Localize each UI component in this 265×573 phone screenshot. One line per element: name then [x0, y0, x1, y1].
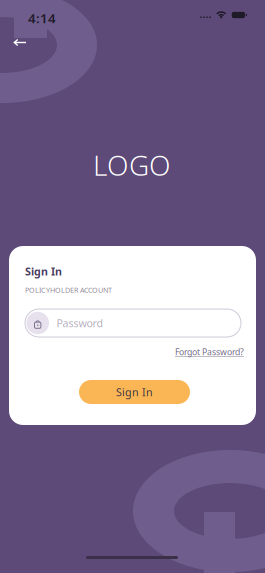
staticText: Forgot Password?: [175, 346, 244, 358]
staticText: Password: [56, 316, 103, 330]
staticText: 4:14: [28, 9, 56, 27]
staticText: Sign In: [116, 385, 153, 399]
button[interactable]: Password: [25, 309, 241, 337]
button[interactable]: Sign In: [79, 380, 190, 404]
staticText: POLICYHOLDER ACCOUNT: [25, 285, 112, 295]
staticText: LOGO: [93, 146, 171, 184]
button[interactable]: Forgot Password?: [154, 346, 244, 358]
button[interactable]: Back: [5, 29, 35, 55]
staticText: Sign In: [25, 264, 62, 278]
